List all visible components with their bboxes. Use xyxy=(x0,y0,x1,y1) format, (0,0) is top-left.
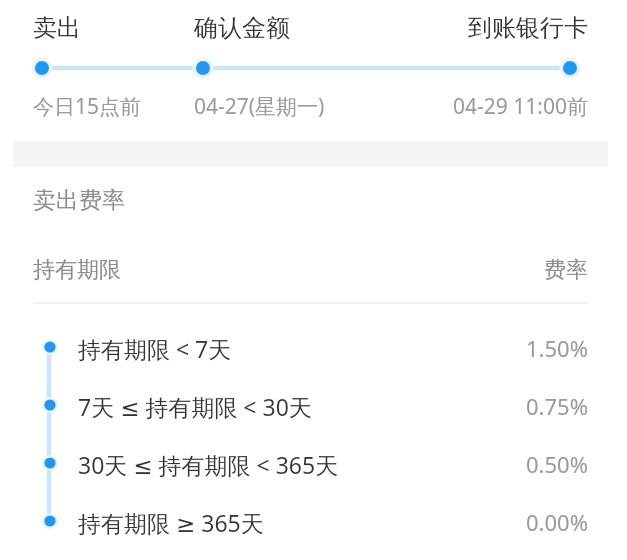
staticText: 到账银行卡 xyxy=(468,13,588,43)
staticText: 持有期限 xyxy=(33,256,121,284)
staticText: 今日15点前 xyxy=(33,92,142,121)
button[interactable]: 步骤节点 xyxy=(20,321,608,373)
staticText: 卖出 xyxy=(33,13,81,43)
button[interactable]: 步骤节点 xyxy=(20,379,608,431)
button[interactable]: 步骤节点 xyxy=(20,437,608,489)
other: 步骤节点 xyxy=(42,339,58,355)
other: 步骤节点 xyxy=(42,455,58,471)
staticText: 04-27(星期一) xyxy=(194,92,325,121)
staticText: 卖出费率 xyxy=(33,186,125,215)
staticText: 持有期限 ≥ 365天 xyxy=(78,507,264,538)
staticText: 0.75% xyxy=(526,391,588,421)
staticText: 7天 ≤ 持有期限 < 30天 xyxy=(78,391,312,422)
other: 步骤节点 xyxy=(42,513,58,529)
staticText: 1.50% xyxy=(526,333,588,363)
staticText: 费率 xyxy=(544,256,588,284)
staticText: 持有期限 < 7天 xyxy=(78,333,232,364)
staticText: 确认金额 xyxy=(194,13,290,43)
other: 步骤节点 xyxy=(42,397,58,413)
staticText: 0.00% xyxy=(526,507,588,537)
staticText: 30天 ≤ 持有期限 < 365天 xyxy=(78,449,339,480)
staticText: 04-29 11:00前 xyxy=(453,92,588,120)
staticText: 0.50% xyxy=(526,449,588,479)
button[interactable]: 步骤节点 xyxy=(20,495,608,547)
